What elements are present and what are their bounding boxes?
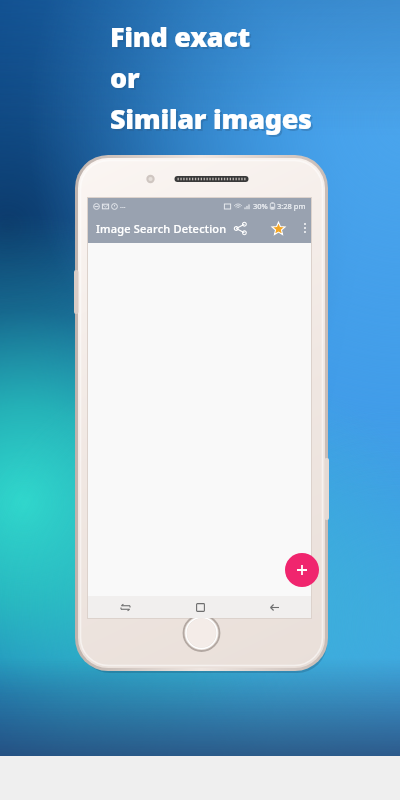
button[interactable]: Back xyxy=(237,596,311,618)
staticText: Find exact xyxy=(110,18,250,55)
staticText: Image Search Detection xyxy=(96,221,227,236)
button[interactable]: Favourite xyxy=(265,215,291,241)
button[interactable]: Recent apps xyxy=(88,596,163,618)
button[interactable]: More options xyxy=(299,217,311,239)
button[interactable]: Home xyxy=(163,596,237,618)
button[interactable]: Share xyxy=(227,215,253,241)
button[interactable]: Add image xyxy=(285,553,319,587)
staticText: Similar images xyxy=(110,100,312,137)
staticText: or xyxy=(112,61,142,98)
staticText: Find exact xyxy=(112,20,252,57)
staticText: 30% xyxy=(253,201,268,211)
staticText: 3:28 pm xyxy=(277,201,306,211)
staticText: or xyxy=(110,59,140,96)
staticText: ... xyxy=(120,201,126,211)
staticText: Similar images xyxy=(112,102,314,139)
